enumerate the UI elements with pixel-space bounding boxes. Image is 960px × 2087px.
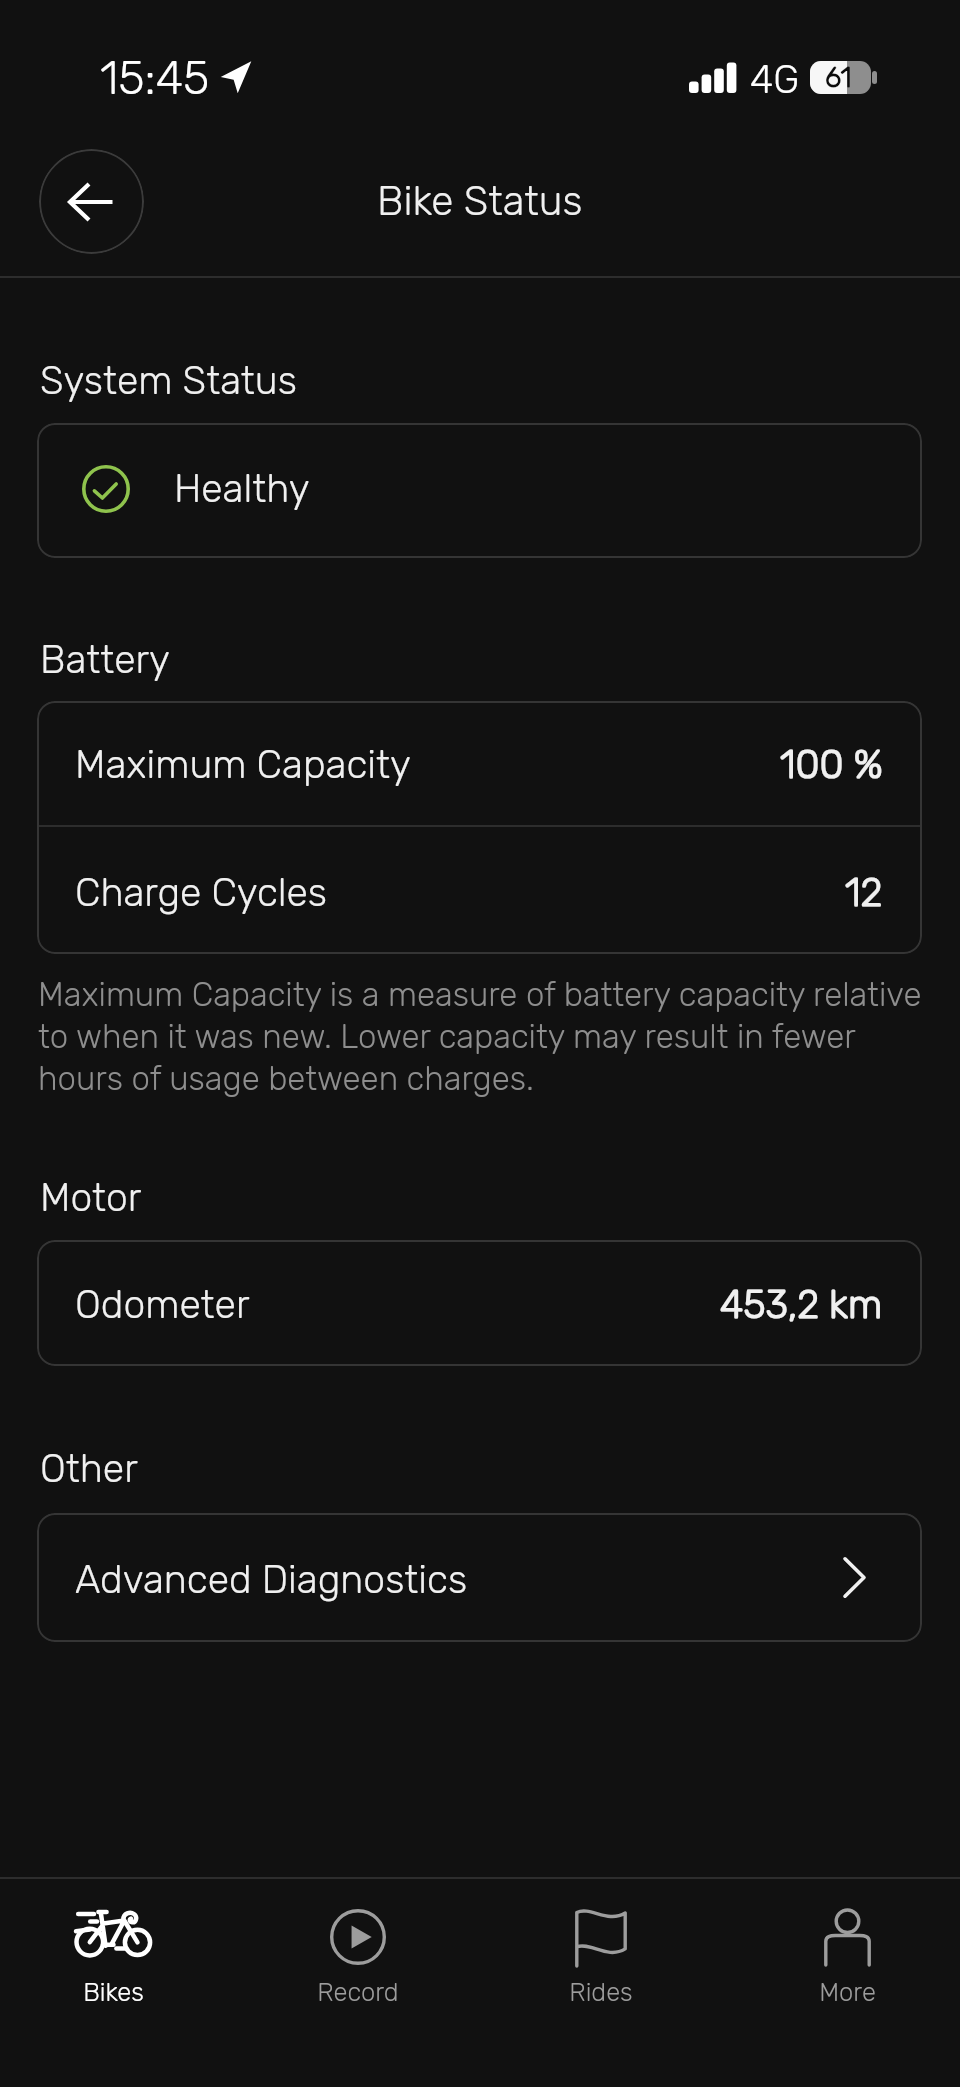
- button[interactable]: Advanced Diagnostics: [37, 1513, 922, 1642]
- button[interactable]: Bikes: [33, 1879, 193, 1999]
- staticText: 453,2 km: [720, 1282, 883, 1328]
- button[interactable]: Record: [278, 1879, 438, 1999]
- staticText: Other: [40, 1446, 138, 1492]
- staticText: 4G: [750, 57, 800, 103]
- button[interactable]: Rides: [521, 1879, 681, 1999]
- button[interactable]: Maximum Capacity: [37, 701, 922, 825]
- staticText: 12: [845, 870, 883, 916]
- staticText: 61: [825, 61, 852, 94]
- button[interactable]: Charge Cycles: [37, 827, 922, 954]
- staticText: System Status: [40, 358, 297, 404]
- staticText: 100 %: [780, 742, 883, 788]
- staticText: Maximum Capacity: [75, 742, 411, 788]
- button[interactable]: More: [767, 1879, 927, 1999]
- button[interactable]: Back: [39, 149, 144, 254]
- staticText: Motor: [40, 1175, 142, 1221]
- staticText: Charge Cycles: [75, 870, 328, 916]
- staticText: More: [819, 1977, 876, 2007]
- staticText: Battery: [40, 637, 170, 683]
- staticText: Maximum Capacity is a measure of battery…: [38, 975, 922, 1098]
- staticText: Healthy: [174, 466, 310, 512]
- staticText: Rides: [569, 1977, 633, 2007]
- staticText: 15:45: [100, 51, 210, 106]
- staticText: Bike Status: [377, 177, 583, 225]
- staticText: Odometer: [75, 1282, 250, 1328]
- staticText: Advanced Diagnostics: [75, 1557, 468, 1603]
- button[interactable]: Odometer: [37, 1240, 922, 1366]
- button[interactable]: Healthy: [37, 423, 922, 558]
- staticText: Bikes: [83, 1977, 144, 2007]
- staticText: Record: [317, 1977, 399, 2007]
